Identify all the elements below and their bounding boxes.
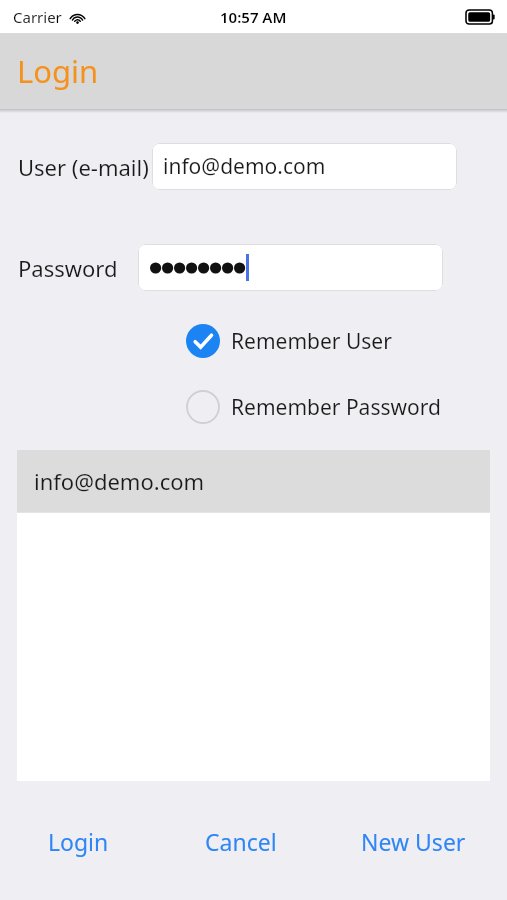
staticText: User (e-mail) — [18, 152, 149, 182]
staticText: Password — [18, 253, 118, 283]
button[interactable]: info@demo.com — [152, 143, 457, 190]
staticText: Remember Password — [231, 393, 441, 422]
button[interactable]: info@demo.com — [17, 450, 490, 512]
button[interactable]: New User — [325, 819, 507, 863]
staticText: Cancel — [205, 826, 277, 857]
button[interactable]: Login — [0, 819, 160, 863]
button[interactable] — [138, 244, 443, 291]
staticText: Login — [48, 826, 109, 857]
staticText: Remember User — [231, 327, 392, 356]
staticText: Login — [17, 50, 99, 92]
staticText: New User — [361, 826, 466, 857]
staticText: info@demo.com — [34, 466, 205, 496]
button[interactable]: Remember Password — [186, 390, 441, 424]
button[interactable]: Cancel — [160, 819, 325, 863]
staticText: Carrier — [13, 7, 62, 27]
staticText: 10:57 AM — [220, 7, 287, 27]
staticText: info@demo.com — [163, 152, 326, 181]
button[interactable]: Remember User — [186, 324, 392, 358]
